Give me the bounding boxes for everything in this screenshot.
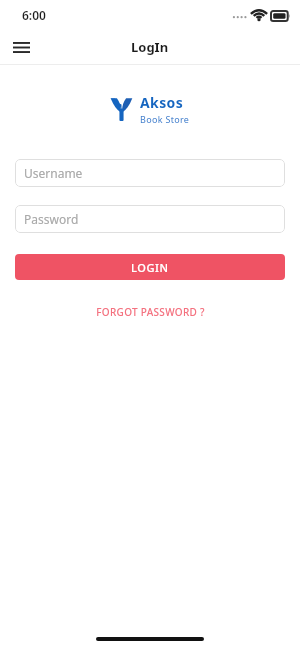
button[interactable]: FORGOT PASSWORD ?: [88, 302, 213, 322]
button[interactable]: Password: [15, 205, 285, 233]
staticText: LOGIN: [131, 260, 169, 275]
staticText: Username: [24, 165, 83, 181]
button[interactable]: Open navigation menu: [8, 34, 34, 60]
staticText: LogIn: [131, 38, 169, 56]
staticText: Password: [24, 211, 79, 227]
button[interactable]: LOGIN: [15, 254, 285, 280]
staticText: 6:00: [22, 7, 46, 23]
staticText: FORGOT PASSWORD ?: [96, 305, 205, 319]
staticText: Aksos: [140, 93, 184, 112]
button[interactable]: Username: [15, 159, 285, 187]
staticText: Book Store: [140, 113, 190, 125]
